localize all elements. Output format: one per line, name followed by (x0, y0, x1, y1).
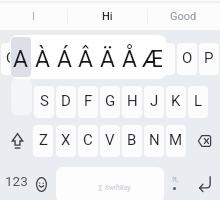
button[interactable]: Z (33, 125, 53, 157)
button[interactable]: Â (76, 37, 96, 77)
staticText: Á (57, 46, 73, 73)
button[interactable]: I (0, 3, 67, 30)
button[interactable]: Good (147, 3, 220, 30)
button[interactable]: S (34, 86, 54, 118)
staticText: I (32, 10, 35, 23)
button[interactable]: À (33, 37, 53, 77)
staticText: C (83, 131, 93, 149)
button[interactable]: Backspace (191, 125, 217, 157)
button[interactable]: Emoji (30, 166, 53, 200)
staticText: ?!, (172, 176, 179, 184)
staticText: K (171, 92, 181, 110)
staticText: V (105, 131, 115, 149)
staticText: T (95, 49, 104, 67)
button[interactable]: Punctuation (165, 166, 187, 200)
button[interactable]: Å (120, 37, 140, 77)
staticText: À (35, 46, 51, 73)
staticText: M (169, 131, 183, 149)
button[interactable]: Ä (98, 37, 118, 77)
button[interactable]: I (155, 43, 175, 75)
button[interactable]: W (23, 43, 43, 75)
staticText: A (13, 46, 29, 73)
button[interactable]: P (199, 43, 219, 75)
button[interactable]: X (56, 125, 76, 157)
staticText: X (61, 131, 71, 149)
staticText: J (150, 92, 159, 110)
staticText: N (149, 131, 160, 149)
staticText: Â (78, 46, 94, 73)
staticText: D (61, 92, 71, 110)
button[interactable]: C (78, 125, 98, 157)
button[interactable]: Y (111, 43, 131, 75)
staticText: Hi (102, 10, 113, 23)
button[interactable]: B (122, 125, 142, 157)
staticText: Æ (142, 46, 162, 73)
staticText: L (194, 92, 203, 110)
staticText: S (40, 92, 49, 110)
button[interactable]: Q (1, 43, 21, 75)
button[interactable]: Shift (4, 125, 30, 157)
staticText: E (51, 49, 60, 67)
staticText: Ä (100, 46, 116, 73)
button[interactable]: K (166, 86, 186, 118)
staticText: Å (122, 46, 138, 73)
staticText: Y (116, 49, 126, 67)
button[interactable]: Enter (191, 166, 218, 200)
button[interactable]: F (78, 86, 98, 118)
button[interactable]: O (177, 43, 197, 75)
staticText: R (72, 49, 82, 67)
button[interactable]: R (67, 43, 87, 75)
staticText: W (26, 49, 40, 67)
button[interactable]: A (11, 37, 31, 77)
button[interactable]: G (100, 86, 120, 118)
staticText: 123 (5, 173, 28, 189)
button[interactable]: U (133, 43, 153, 75)
button[interactable]: T (89, 43, 109, 75)
button[interactable]: Æ (142, 37, 162, 77)
staticText: B (127, 131, 137, 149)
button[interactable]: V (100, 125, 120, 157)
staticText: F (84, 92, 93, 110)
button[interactable]: Hi (67, 3, 147, 30)
staticText: P (204, 49, 214, 67)
staticText: Z (39, 131, 48, 149)
button[interactable]: J (144, 86, 164, 118)
button[interactable]: L (188, 86, 208, 118)
staticText: O (182, 49, 193, 67)
button[interactable]: Á (55, 37, 75, 77)
staticText: Good (170, 10, 197, 23)
staticText: U (138, 49, 148, 67)
button[interactable]: M (166, 125, 186, 157)
button[interactable]: N (144, 125, 164, 157)
button[interactable]: D (56, 86, 76, 118)
staticText: SwiftKey (105, 184, 131, 192)
staticText: G (105, 92, 116, 110)
button[interactable]: H (122, 86, 142, 118)
staticText: H (127, 92, 138, 110)
staticText: Q (6, 49, 17, 67)
button[interactable]: Space (56, 167, 164, 200)
button[interactable]: 123 (2, 166, 31, 200)
button[interactable]: E (45, 43, 65, 75)
